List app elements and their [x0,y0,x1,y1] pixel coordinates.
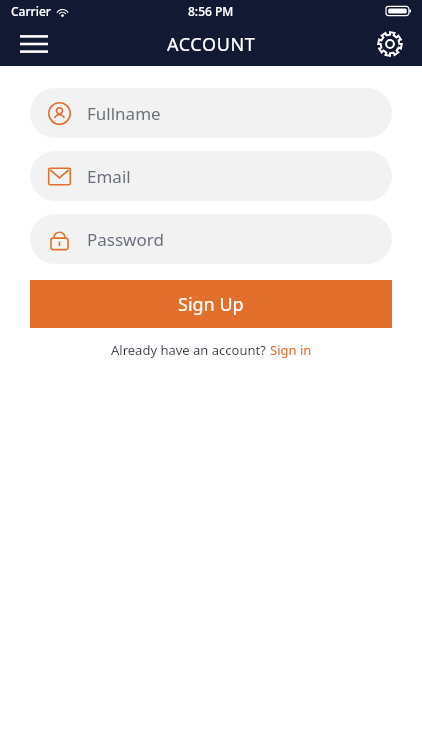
staticText: Sign in [270,341,312,359]
button[interactable]: Settings [370,24,410,64]
staticText: 8:56 PM [188,3,234,19]
staticText: Carrier [11,3,51,19]
staticText: Already have an account? [111,341,270,359]
button[interactable]: Sign in [270,341,312,359]
button[interactable]: Menu [14,24,54,64]
button[interactable]: Fullname [30,88,392,138]
staticText: Fullname [87,102,161,125]
button[interactable]: Email [30,151,392,201]
staticText: Password [87,228,164,251]
button[interactable]: Sign Up [30,280,392,328]
button[interactable]: Password [30,214,392,264]
staticText: Email [87,165,131,188]
staticText: ACCOUNT [167,32,256,57]
staticText: Sign Up [178,292,244,317]
